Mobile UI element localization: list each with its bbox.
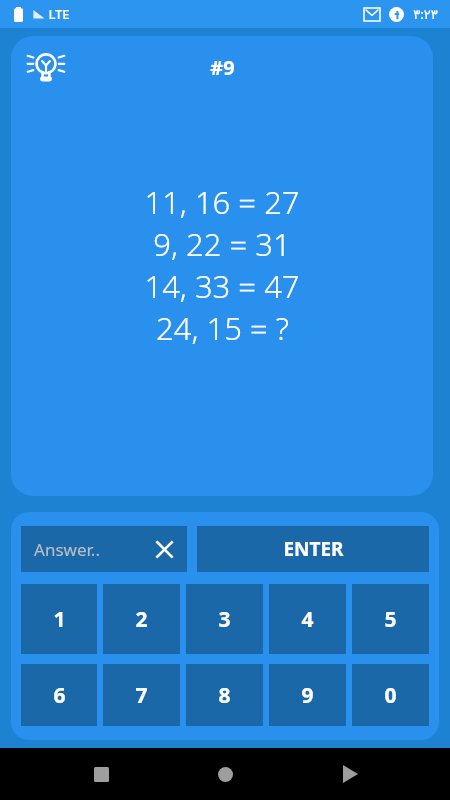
button[interactable]: 4	[269, 584, 346, 654]
button[interactable]: ENTER	[197, 526, 429, 572]
staticText: ٣:٢٣	[413, 5, 438, 23]
button[interactable]: Back	[326, 750, 374, 798]
staticText: 8	[218, 681, 231, 710]
staticText: LTE	[48, 5, 70, 23]
staticText: 4	[301, 605, 314, 634]
button[interactable]: 0	[352, 664, 429, 726]
staticText: 2	[135, 605, 148, 634]
staticText: 14, 33 = 47	[144, 265, 300, 307]
button[interactable]: 2	[103, 584, 180, 654]
button[interactable]: Hint	[19, 40, 73, 94]
staticText: ENTER	[283, 536, 344, 562]
button[interactable]: 6	[21, 664, 97, 726]
button[interactable]: 9	[269, 664, 346, 726]
button[interactable]: Home	[201, 750, 249, 798]
staticText: 0	[384, 681, 397, 710]
staticText: 7	[135, 681, 148, 710]
staticText: #9	[210, 54, 235, 81]
staticText: Answer..	[34, 538, 100, 561]
staticText: 1	[53, 605, 66, 634]
button[interactable]: 5	[352, 584, 429, 654]
button[interactable]: Recents	[77, 750, 125, 798]
button[interactable]: 1	[21, 584, 97, 654]
staticText: 9, 22 = 31	[153, 223, 291, 265]
button[interactable]: Answer..	[21, 526, 187, 572]
staticText: 9	[301, 681, 314, 710]
staticText: 6	[53, 681, 66, 710]
staticText: 5	[384, 605, 397, 634]
button[interactable]: 7	[103, 664, 180, 726]
staticText: 3	[218, 605, 231, 634]
staticText: 11, 16 = 27	[144, 181, 300, 223]
button[interactable]: 3	[186, 584, 263, 654]
button[interactable]: Clear	[149, 534, 179, 564]
staticText: 24, 15 = ?	[156, 307, 289, 349]
button[interactable]: 8	[186, 664, 263, 726]
